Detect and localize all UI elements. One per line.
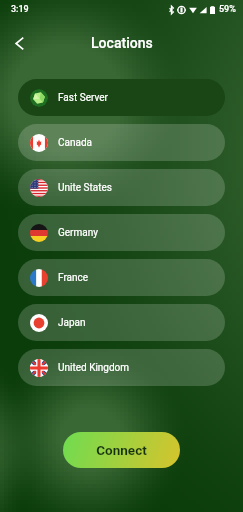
button[interactable]: Germany [18,214,225,251]
button[interactable]: Japan [18,304,225,341]
staticText: Unite States [58,182,112,194]
staticText: Canada [58,137,92,149]
staticText: Japan [58,317,86,329]
button[interactable]: United Kingdom [18,349,225,386]
button[interactable]: Canada [18,124,225,161]
staticText: 59% [219,4,236,15]
staticText: France [58,272,89,284]
staticText: United Kingdom [58,362,130,374]
button[interactable]: Unite States [18,169,225,206]
button[interactable]: Back [6,30,32,56]
staticText: Connect [96,442,147,458]
button[interactable]: Fast Server [18,79,225,116]
staticText: Germany [58,227,98,239]
staticText: Fast Server [58,92,108,104]
staticText: Locations [91,35,153,51]
staticText: 3:19 [11,4,29,15]
button[interactable]: France [18,259,225,296]
button[interactable]: Connect [63,432,180,468]
